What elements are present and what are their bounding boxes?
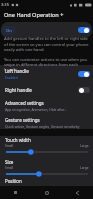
staticText: 3:35 bbox=[1, 2, 9, 7]
button[interactable]: Off bbox=[78, 87, 90, 93]
staticText: One Hand Operation + bbox=[4, 11, 64, 19]
staticText: App recognition, Animation, Hide after..… bbox=[5, 107, 67, 111]
staticText: On bbox=[6, 28, 12, 34]
staticText: Left handle bbox=[5, 68, 29, 74]
staticText: Large bbox=[80, 166, 89, 170]
staticText: Add gesture handles to the left or right… bbox=[4, 36, 89, 72]
button[interactable]: Back bbox=[62, 186, 93, 199]
staticText: Gesture settings bbox=[5, 117, 40, 123]
button[interactable]: Left handle bbox=[5, 66, 90, 81]
staticText: Large bbox=[80, 144, 89, 148]
staticText: Right handle bbox=[5, 87, 32, 93]
button[interactable]: On bbox=[78, 27, 90, 33]
staticText: Size bbox=[5, 159, 14, 165]
button[interactable]: Gesture settings bbox=[5, 115, 90, 130]
button[interactable]: Advanced settings bbox=[5, 98, 90, 113]
staticText: Small bbox=[5, 166, 14, 170]
staticText: Touch width bbox=[5, 137, 31, 143]
button[interactable]: On bbox=[1, 22, 92, 38]
staticText: Position bbox=[5, 178, 22, 184]
staticText: Quick action, Gesture angles, Gesture se… bbox=[5, 124, 80, 128]
button[interactable]: On bbox=[78, 71, 90, 77]
button[interactable]: Home bbox=[31, 186, 62, 199]
staticText: Small bbox=[5, 144, 14, 148]
staticText: Enabled bbox=[5, 75, 18, 79]
staticText: Advanced settings bbox=[5, 100, 44, 106]
button[interactable]: Right handle bbox=[5, 83, 90, 96]
button[interactable]: Recent apps bbox=[0, 186, 31, 199]
